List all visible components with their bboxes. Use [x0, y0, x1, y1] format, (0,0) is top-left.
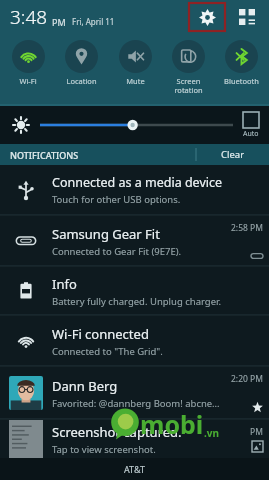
- staticText: Wi-Fi connected: [52, 325, 149, 343]
- button[interactable]: Bluetooth: [216, 37, 266, 86]
- button[interactable]: Clear: [196, 144, 269, 165]
- staticText: Tap to view screenshot.: [52, 443, 156, 456]
- staticText: Battery fully charged. Unplug charger.: [52, 295, 221, 308]
- button[interactable]: Samsung Gear Fit: [0, 216, 269, 266]
- button[interactable]: Wi-Fi connected: [0, 316, 269, 366]
- button[interactable]: Location: [56, 37, 106, 86]
- staticText: 2:20 PM: [231, 373, 263, 385]
- staticText: Connected to "The Grid".: [52, 345, 163, 358]
- staticText: Connected to Gear Fit (9E7E).: [52, 245, 182, 258]
- staticText: Wi-Fi: [19, 76, 37, 86]
- staticText: Favorited: @dannberg Boom! abcnew...: [52, 397, 225, 410]
- button[interactable]: Quick settings: [234, 4, 260, 30]
- staticText: NOTIFICATIONS: [10, 149, 79, 161]
- button[interactable]: [40, 115, 233, 135]
- staticText: Bluetooth: [224, 76, 259, 86]
- button[interactable]: Screenshot captured.: [0, 420, 269, 458]
- staticText: PM: [250, 426, 263, 438]
- staticText: .vn: [204, 426, 220, 440]
- button[interactable]: Connected as a media device: [0, 165, 269, 215]
- staticText: Location: [66, 76, 97, 86]
- staticText: Samsung Gear Fit: [52, 225, 160, 243]
- staticText: mobi: [140, 407, 204, 441]
- button[interactable]: Mute: [110, 37, 160, 86]
- button[interactable]: Dann Berg: [0, 367, 269, 419]
- staticText: AT&T: [124, 463, 145, 475]
- staticText: Screenshot captured.: [52, 423, 182, 441]
- staticText: Screen rotation: [174, 76, 203, 95]
- staticText: Auto: [243, 129, 259, 139]
- button[interactable]: Screen rotation: [163, 37, 213, 95]
- button[interactable]: Brightness: [10, 114, 32, 136]
- button[interactable]: Info: [0, 267, 269, 315]
- staticText: Mute: [126, 76, 145, 86]
- button[interactable]: Auto: [243, 112, 259, 139]
- staticText: 2:58 PM: [231, 222, 263, 234]
- staticText: 3:48: [10, 4, 48, 30]
- staticText: Info: [52, 275, 77, 293]
- button[interactable]: Wi-Fi: [3, 37, 53, 86]
- staticText: PM: [52, 16, 66, 28]
- staticText: Dann Berg: [52, 377, 118, 395]
- staticText: Fri, April 11: [72, 16, 115, 27]
- staticText: Touch for other USB options.: [52, 193, 181, 206]
- staticText: Connected as a media device: [52, 174, 223, 191]
- button[interactable]: Settings: [189, 3, 225, 31]
- staticText: Clear: [221, 148, 245, 161]
